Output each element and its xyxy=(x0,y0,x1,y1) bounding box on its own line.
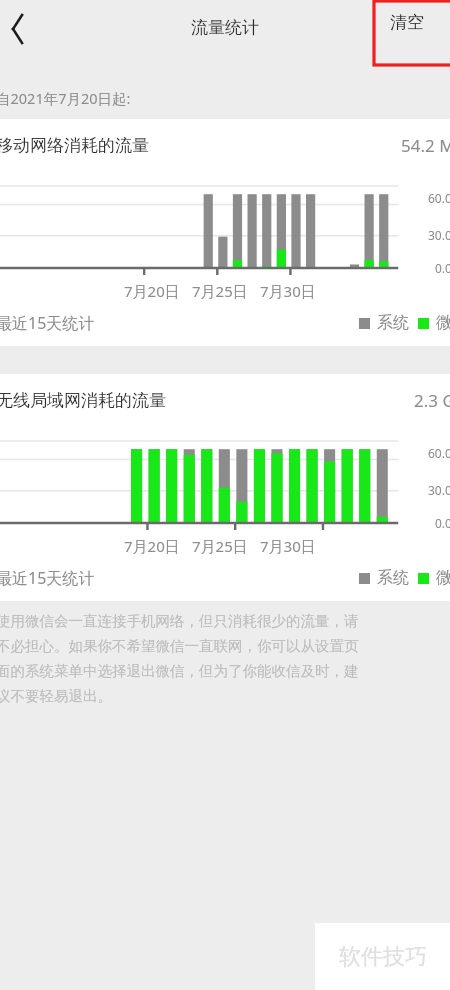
staticText: 60.0 MB xyxy=(428,445,450,461)
button[interactable]: Back xyxy=(0,7,28,51)
staticText: 软件技巧 xyxy=(339,943,427,971)
button[interactable]: 无线局域网消耗的流量 xyxy=(0,374,450,601)
staticText: 7月30日 xyxy=(260,536,316,556)
staticText: 0.0 MB xyxy=(435,260,450,276)
staticText: 微信 xyxy=(436,568,450,588)
staticText: 无线局域网消耗的流量 xyxy=(0,390,166,411)
staticText: 移动网络消耗的流量 xyxy=(0,135,149,156)
staticText: 最近15天统计 xyxy=(0,312,95,334)
staticText: 最近15天统计 xyxy=(0,567,95,589)
staticText: 系统 xyxy=(377,568,409,588)
staticText: 7月25日 xyxy=(192,281,248,301)
staticText: 7月20日 xyxy=(124,536,180,556)
staticText: 系统 xyxy=(377,313,409,333)
staticText: 微信 xyxy=(436,313,450,333)
staticText: 54.2 MB xyxy=(401,134,450,157)
staticText: 7月30日 xyxy=(260,281,316,301)
staticText: 使用微信会一直连接手机网络，但只消耗很少的流量，请 不必担心。如果你不希望微信一… xyxy=(0,612,359,705)
staticText: 0.0 MB xyxy=(435,515,450,531)
staticText: 自2021年7月20日起: xyxy=(0,88,131,108)
button[interactable]: 清空 xyxy=(374,1,450,65)
staticText: 清空 xyxy=(390,12,424,33)
staticText: 7月20日 xyxy=(124,281,180,301)
staticText: 60.0 MB xyxy=(428,190,450,206)
staticText: 流量统计 xyxy=(191,17,259,38)
staticText: 7月25日 xyxy=(192,536,248,556)
staticText: 2.3 GB xyxy=(414,389,450,412)
button[interactable]: 移动网络消耗的流量 xyxy=(0,119,450,346)
staticText: 30.0 MB xyxy=(428,227,450,243)
staticText: 30.0 MB xyxy=(428,482,450,498)
